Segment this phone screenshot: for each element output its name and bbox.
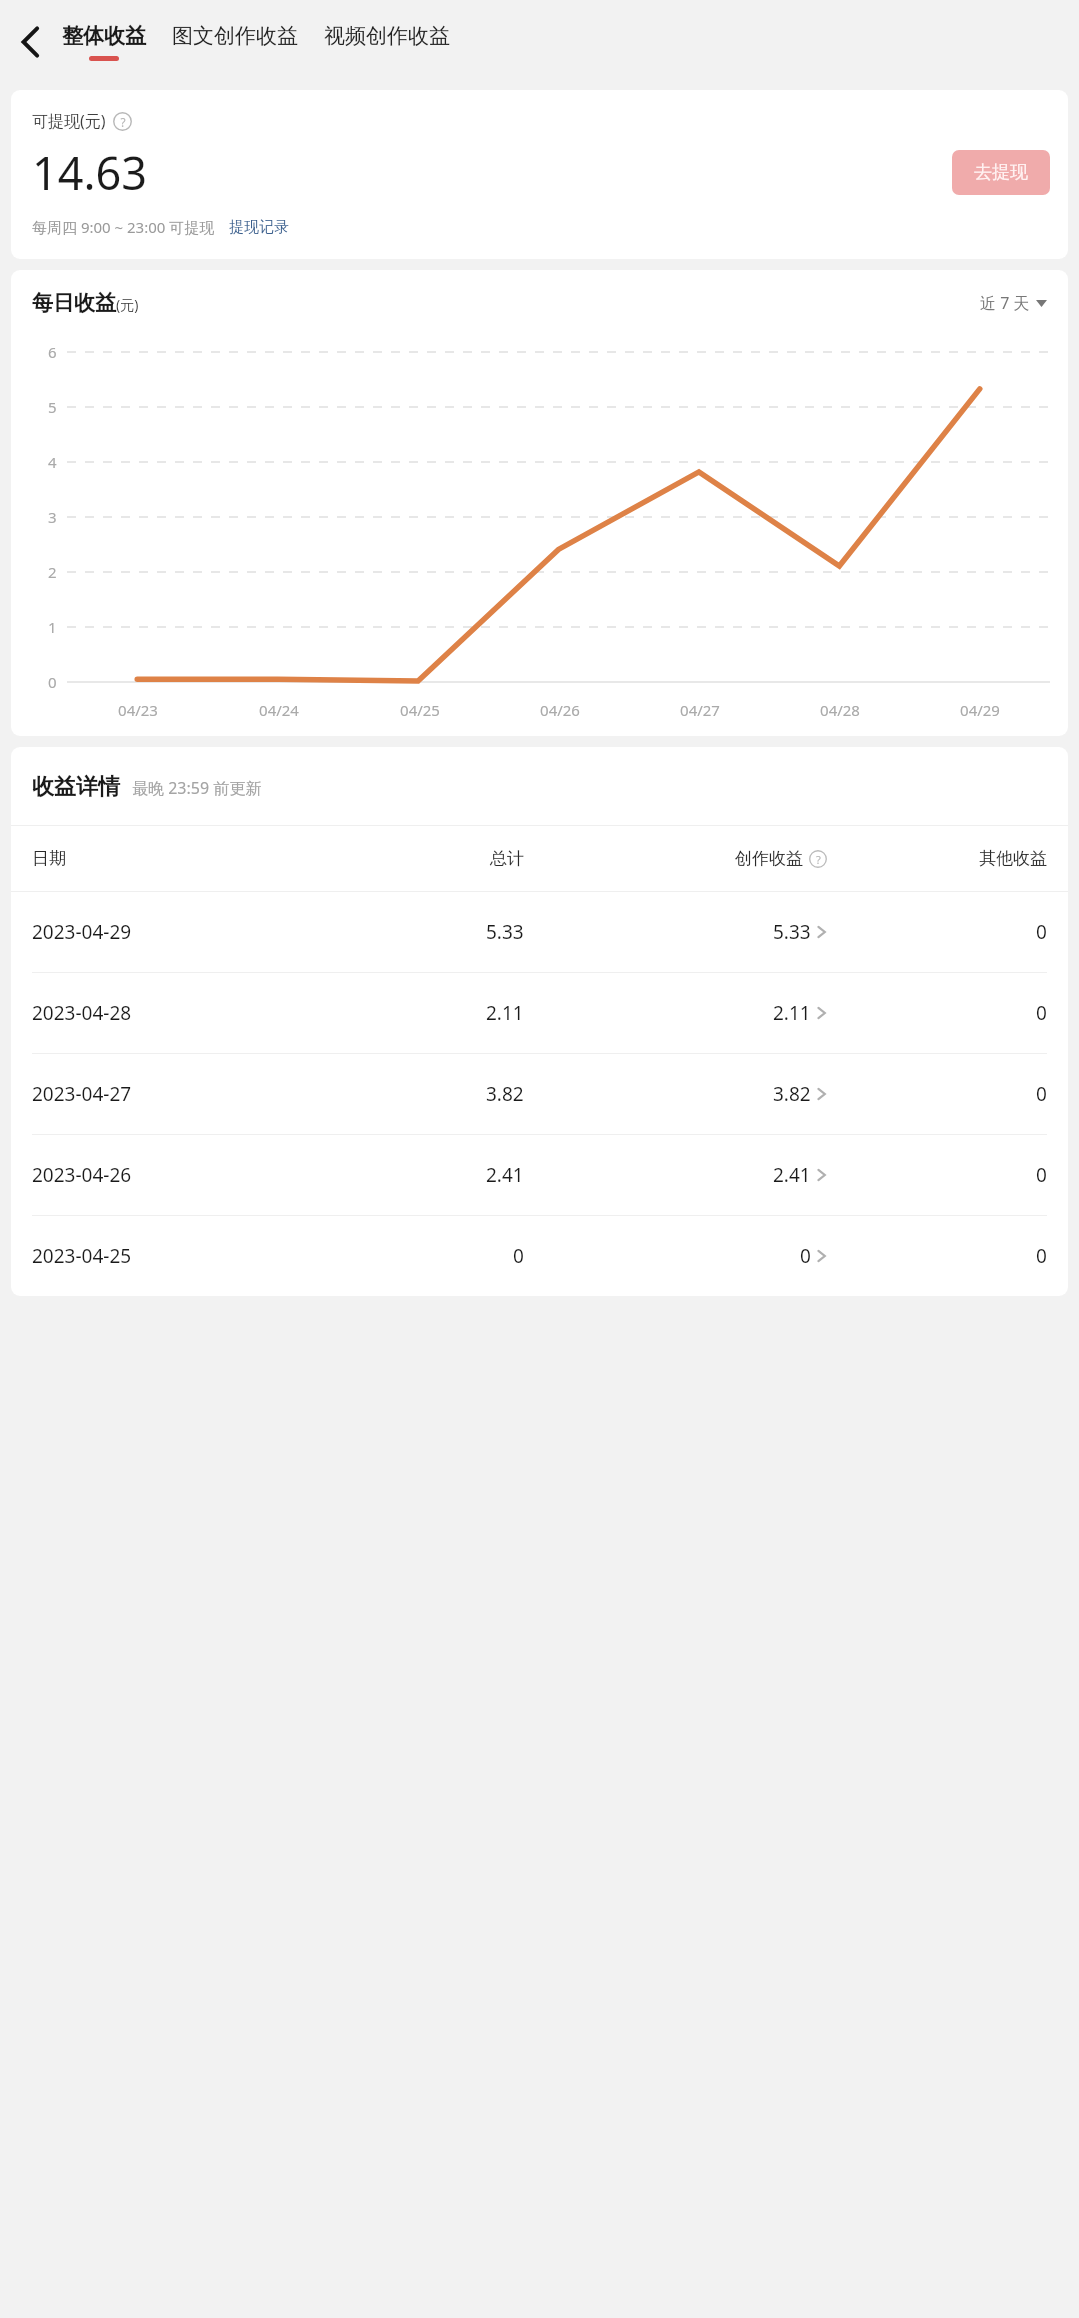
staticText: 每周四 9:00 ~ 23:00 可提现 [32, 217, 215, 237]
staticText: 0 [48, 672, 57, 692]
staticText: 1 [48, 617, 57, 637]
button[interactable]: 2023-04-25 [11, 1216, 1068, 1296]
staticText: (元) [116, 295, 139, 314]
staticText: 0 [1036, 1162, 1047, 1188]
staticText: ? [816, 852, 821, 867]
button[interactable]: 2023-04-27 [11, 1054, 1068, 1134]
staticText: 04/25 [400, 700, 440, 720]
button[interactable]: Back [0, 0, 62, 84]
staticText: 2.11 [486, 1000, 524, 1026]
staticText: ? [120, 114, 126, 130]
staticText: 其他收益 [979, 848, 1047, 869]
staticText: 04/29 [960, 700, 1000, 720]
staticText: 0 [513, 1243, 524, 1269]
button[interactable]: 2023-04-29 [11, 892, 1068, 972]
staticText: 2.11 [773, 1000, 811, 1026]
staticText: 创作收益 [735, 848, 803, 869]
staticText: 2023-04-26 [32, 1162, 132, 1188]
staticText: 提现记录 [229, 218, 289, 237]
staticText: 5.33 [773, 919, 811, 945]
button[interactable]: 2023-04-26 [11, 1135, 1068, 1215]
staticText: 日期 [32, 848, 66, 869]
staticText: 5.33 [486, 919, 524, 945]
button[interactable]: 帮助 [113, 112, 132, 131]
button[interactable]: 图文创作收益 [172, 0, 298, 84]
staticText: 2 [48, 562, 57, 582]
staticText: 0 [1036, 1081, 1047, 1107]
staticText: 2.41 [773, 1162, 811, 1188]
staticText: 04/27 [680, 700, 720, 720]
staticText: 2023-04-28 [32, 1000, 132, 1026]
staticText: 2.41 [486, 1162, 524, 1188]
staticText: 收益详情 [32, 773, 120, 801]
staticText: 视频创作收益 [324, 23, 450, 49]
staticText: 14.63 [32, 142, 148, 203]
button[interactable]: 去提现 [952, 150, 1050, 195]
staticText: 0 [1036, 1243, 1047, 1269]
staticText: 04/26 [540, 700, 580, 720]
staticText: 0 [1036, 1000, 1047, 1026]
staticText: 0 [800, 1243, 811, 1269]
staticText: 可提现(元) [32, 110, 106, 132]
staticText: 每日收益 [32, 290, 116, 316]
staticText: 总计 [490, 848, 524, 869]
staticText: 6 [48, 342, 57, 362]
staticText: 2023-04-29 [32, 919, 132, 945]
staticText: 整体收益 [62, 23, 146, 49]
staticText: 近 7 天 [980, 292, 1030, 314]
staticText: 3.82 [486, 1081, 524, 1107]
staticText: 04/23 [118, 700, 158, 720]
staticText: 5 [48, 397, 57, 417]
staticText: 最晚 23:59 前更新 [132, 777, 262, 799]
staticText: 去提现 [974, 161, 1028, 184]
staticText: 3 [48, 507, 57, 527]
staticText: 04/24 [259, 700, 299, 720]
staticText: 04/28 [820, 700, 860, 720]
button[interactable]: 整体收益 [62, 0, 146, 84]
staticText: 0 [1036, 919, 1047, 945]
button[interactable]: 近 7 天 [980, 292, 1047, 314]
button[interactable]: 2023-04-28 [11, 973, 1068, 1053]
staticText: 2023-04-27 [32, 1081, 132, 1107]
staticText: 图文创作收益 [172, 23, 298, 49]
staticText: 2023-04-25 [32, 1243, 132, 1269]
button[interactable]: 视频创作收益 [324, 0, 450, 84]
staticText: 4 [48, 452, 57, 472]
button[interactable]: 提现记录 [229, 218, 289, 237]
staticText: 3.82 [773, 1081, 811, 1107]
